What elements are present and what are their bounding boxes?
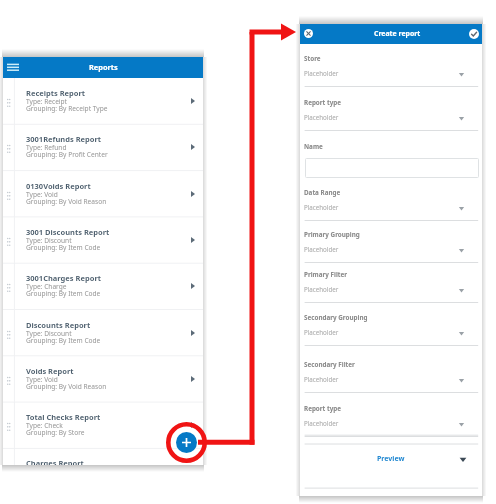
staticText: Primary Filter [304,270,348,279]
button[interactable]: Save report [464,24,482,44]
staticText: Report type [304,404,342,413]
staticText: Type: Check [26,421,63,430]
button[interactable]: 0130Voids Report [3,171,203,217]
staticText: 3001 Discounts Report [26,227,110,237]
staticText: Primary Grouping [304,230,360,239]
button[interactable]: Store [300,57,482,88]
button[interactable]: Add report [176,432,197,453]
staticText: Type: Receipt [26,97,67,106]
staticText: Grouping: By Store [26,428,85,437]
button[interactable]: 3001Charges Report [3,263,203,309]
staticText: Placeholder [304,69,339,77]
staticText: Placeholder [304,113,339,121]
button[interactable]: Charges Report [3,448,203,465]
button[interactable]: Name [300,145,482,185]
staticText: Create report [374,29,421,38]
staticText: Grouping: By Void Reason [26,197,107,206]
staticText: 3001Charges Report [26,273,101,283]
button[interactable]: Secondary Filter [300,363,482,394]
button[interactable]: Report type [300,101,482,132]
button[interactable]: Close [300,24,317,44]
staticText: Grouping: By Profit Center [26,150,108,159]
staticText: Total Checks Report [26,412,101,422]
button[interactable]: Voids Report [3,356,203,402]
staticText: Placeholder [304,328,339,336]
staticText: Report type [304,98,342,107]
staticText: Placeholder [304,203,339,211]
button[interactable]: Report type [300,407,482,438]
staticText: Placeholder [304,285,339,293]
staticText: Name [304,142,323,151]
staticText: Grouping: By Receipt Type [26,104,108,113]
staticText: Grouping: By Item Code [26,243,101,252]
staticText: Reports [89,62,118,72]
staticText: Type: Charge [26,282,67,291]
button[interactable]: Primary Grouping [300,233,482,264]
staticText: Type: Void [26,375,58,384]
button[interactable]: Primary Filter [300,273,482,304]
button[interactable]: Receipts Report [3,78,203,124]
staticText: 0130Voids Report [26,181,91,191]
button[interactable]: Total Checks Report [3,402,203,448]
button[interactable]: Data Range [300,191,482,222]
staticText: 3001Refunds Report [26,134,102,144]
staticText: Type: Void [26,190,58,199]
button[interactable]: Secondary Grouping [300,316,482,347]
staticText: Type: Discount [26,329,72,338]
staticText: Secondary Grouping [304,313,368,322]
staticText: Receipts Report [26,88,86,98]
staticText: Data Range [304,188,341,197]
staticText: Grouping: By Void Reason [26,382,107,391]
staticText: Placeholder [304,375,339,383]
staticText: Voids Report [26,366,74,376]
staticText: Preview [377,454,405,464]
staticText: Placeholder [304,245,339,253]
button[interactable]: Open navigation menu [3,57,25,78]
staticText: Store [304,54,321,63]
staticText: Discounts Report [26,320,91,330]
button[interactable]: 3001 Discounts Report [3,217,203,263]
button[interactable]: Preview [300,451,482,467]
staticText: Placeholder [304,419,339,427]
button[interactable]: Discounts Report [3,310,203,356]
staticText: Grouping: By Item Code [26,289,101,298]
staticText: Charges Report [26,458,84,465]
staticText: Type: Refund [26,143,67,152]
staticText: Type: Discount [26,236,72,245]
staticText: Secondary Filter [304,360,355,369]
button[interactable]: 3001Refunds Report [3,124,203,170]
staticText: Grouping: By Item Code [26,336,101,345]
